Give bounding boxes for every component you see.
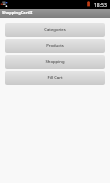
button[interactable]: Fill Cart <box>5 71 105 85</box>
staticText: Categories <box>44 27 66 33</box>
staticText: Shopping <box>45 59 65 65</box>
staticText: Products <box>46 43 64 49</box>
staticText: ShoppingCartII <box>2 10 33 15</box>
staticText: Fill Cart <box>47 75 63 81</box>
button[interactable]: Categories <box>5 23 105 37</box>
staticText: 18:53 <box>94 2 107 9</box>
button[interactable]: Products <box>5 39 105 53</box>
button[interactable]: Shopping <box>5 55 105 69</box>
